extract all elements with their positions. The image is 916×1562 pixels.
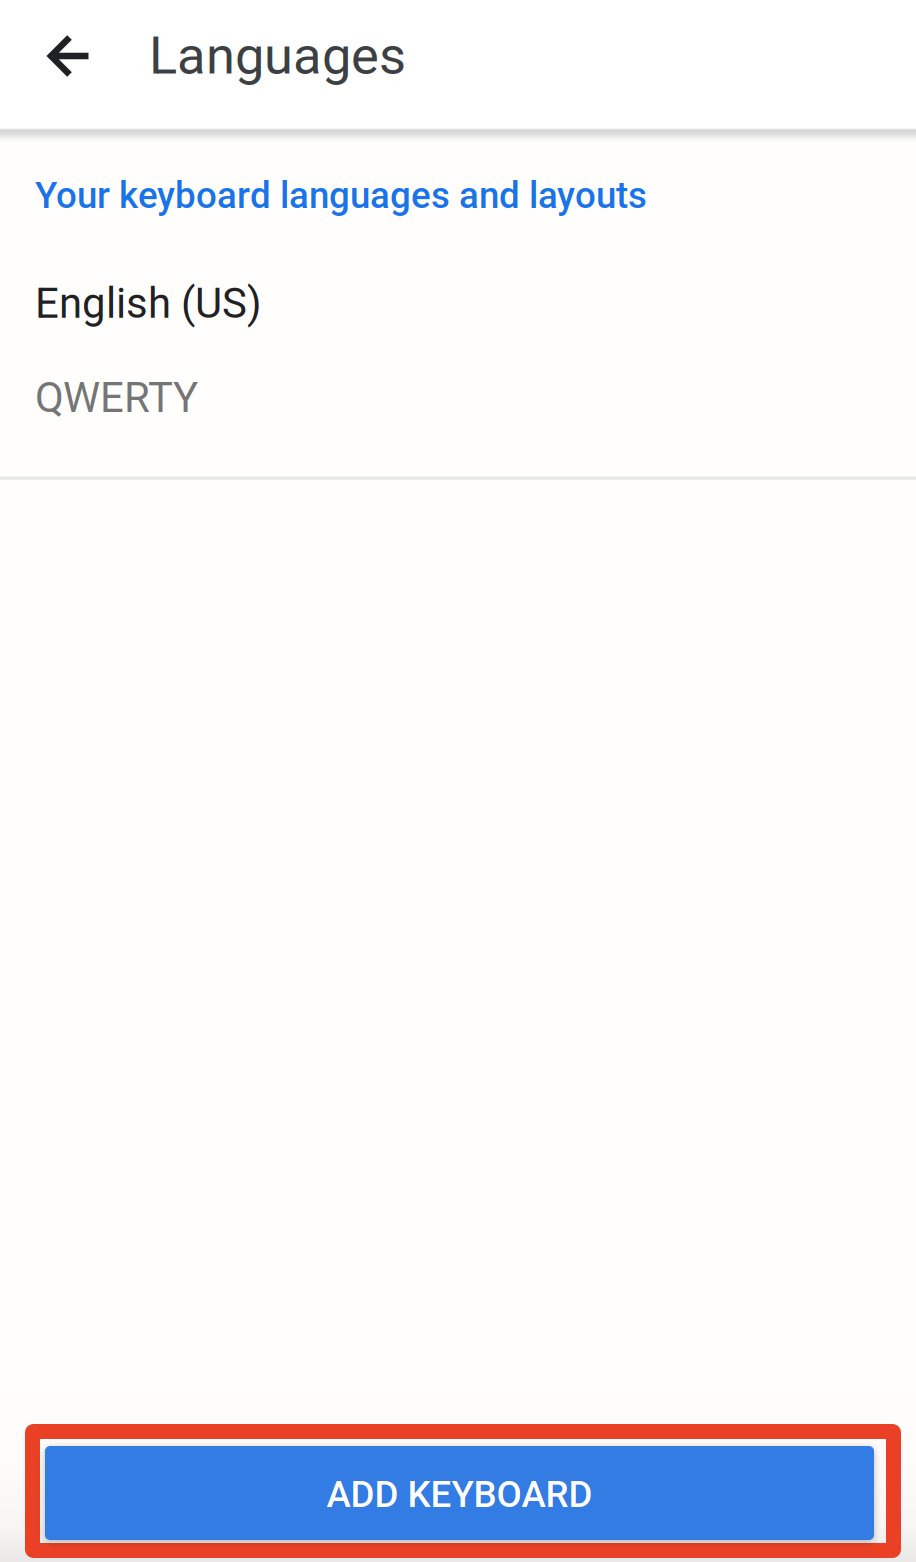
staticText: ADD KEYBOARD bbox=[326, 1473, 592, 1516]
staticText: QWERTY bbox=[35, 373, 198, 422]
button[interactable]: ADD KEYBOARD bbox=[45, 1446, 874, 1540]
staticText: Your keyboard languages and layouts bbox=[35, 174, 647, 217]
button[interactable]: English (US) bbox=[0, 217, 916, 476]
button[interactable]: Back bbox=[0, 0, 134, 110]
staticText: English (US) bbox=[35, 279, 262, 328]
staticText: Languages bbox=[149, 25, 406, 86]
